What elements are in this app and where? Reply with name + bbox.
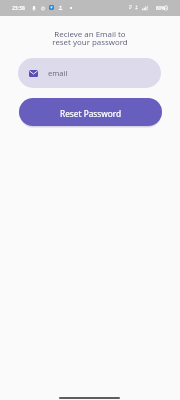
staticText: 23:38 — [12, 5, 25, 12]
staticText: email — [48, 68, 68, 78]
staticText: 60% — [156, 5, 165, 11]
button[interactable]: email — [18, 58, 161, 88]
button[interactable]: Reset Password — [19, 98, 162, 126]
staticText: Recieve an Email to reset your password — [0, 29, 180, 47]
staticText: Reset Password — [60, 108, 122, 119]
